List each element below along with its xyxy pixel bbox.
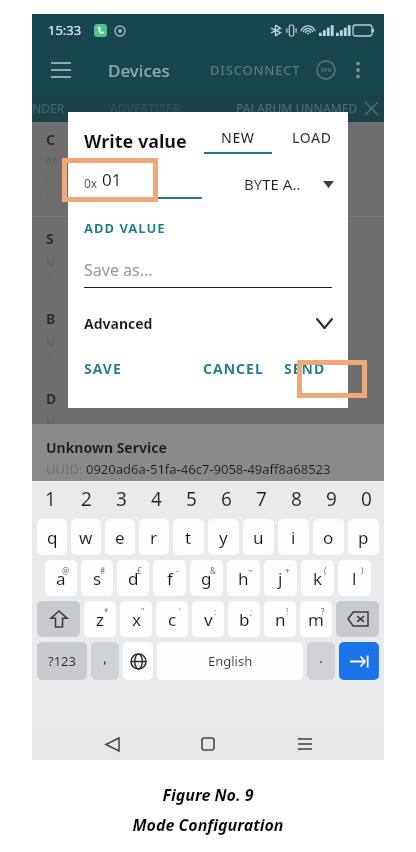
staticText: y xyxy=(219,526,228,549)
button[interactable]: x xyxy=(120,601,152,637)
staticText: ( xyxy=(324,565,327,576)
button[interactable]: 6 xyxy=(209,483,244,515)
staticText: 15:33 xyxy=(48,21,82,39)
staticText: p xyxy=(358,526,369,549)
button[interactable]: g xyxy=(190,560,223,596)
staticText: ' xyxy=(179,606,181,617)
button[interactable]: l xyxy=(338,560,371,596)
button[interactable]: DFU xyxy=(312,56,340,84)
button[interactable]: 0 xyxy=(349,483,384,515)
button[interactable]: NEW xyxy=(196,128,280,154)
button[interactable]: More options xyxy=(344,56,372,84)
staticText: English xyxy=(208,652,253,670)
button[interactable]: k xyxy=(301,560,334,596)
staticText: 0920ad6a-51fa-46c7-9058-49aff8a68523 xyxy=(86,460,331,478)
staticText: i xyxy=(291,526,296,549)
button[interactable]: 8 xyxy=(279,483,314,515)
button[interactable]: b xyxy=(228,601,260,637)
staticText: M xyxy=(46,152,58,170)
button[interactable]: e xyxy=(105,519,135,555)
button[interactable]: h xyxy=(227,560,260,596)
button[interactable]: 4 xyxy=(139,483,174,515)
button[interactable]: z xyxy=(84,601,116,637)
staticText: NEW xyxy=(221,128,255,147)
button[interactable]: Change language xyxy=(123,642,153,680)
button[interactable]: u xyxy=(243,519,274,555)
button[interactable]: Next xyxy=(339,642,379,680)
button[interactable]: i xyxy=(278,519,309,555)
button[interactable]: 1 xyxy=(32,483,68,515)
button[interactable]: d xyxy=(117,560,149,596)
button[interactable]: Shift xyxy=(37,601,80,637)
button[interactable]: o xyxy=(313,519,344,555)
staticText: e xyxy=(115,526,125,549)
staticText: ! xyxy=(286,606,289,617)
button[interactable]: f xyxy=(153,560,186,596)
staticText: h xyxy=(238,567,249,590)
staticText: DISCONNECT xyxy=(210,61,301,79)
staticText: z xyxy=(96,608,104,631)
button[interactable]: Back xyxy=(95,728,129,760)
button[interactable]: 2 xyxy=(68,483,104,515)
staticText: 4 xyxy=(151,486,162,512)
button[interactable]: q xyxy=(37,519,67,555)
button[interactable]: LOAD xyxy=(286,128,338,154)
staticText: C xyxy=(46,130,55,149)
button[interactable]: Backspace xyxy=(336,601,379,637)
button[interactable]: 3 xyxy=(104,483,139,515)
staticText: Devices xyxy=(108,59,170,82)
staticText: q xyxy=(47,526,58,549)
staticText: U xyxy=(46,411,56,424)
button[interactable]: Recents xyxy=(288,728,322,760)
staticText: DFU xyxy=(321,67,332,74)
button[interactable]: 9 xyxy=(314,483,349,515)
button[interactable]: SAVE xyxy=(68,353,132,384)
button[interactable]: Menu xyxy=(46,55,76,85)
staticText: UUID: xyxy=(46,460,86,478)
button[interactable]: ADD VALUE xyxy=(68,215,182,241)
button[interactable]: ?123 xyxy=(37,642,87,680)
button[interactable]: a xyxy=(45,560,77,596)
staticText: LOAD xyxy=(292,128,332,147)
staticText: Write value xyxy=(84,129,187,154)
button[interactable]: CANCEL xyxy=(195,353,272,384)
staticText: ? xyxy=(321,606,325,617)
staticText: 8 xyxy=(291,486,302,512)
staticText: o xyxy=(323,526,334,549)
button[interactable]: , xyxy=(91,642,119,680)
button[interactable]: Advanced xyxy=(68,314,348,333)
staticText: ?123 xyxy=(48,652,76,670)
button[interactable]: r xyxy=(139,519,169,555)
staticText: u xyxy=(253,526,264,549)
staticText: Advanced xyxy=(84,314,153,333)
button[interactable]: 5 xyxy=(174,483,209,515)
button[interactable]: 7 xyxy=(244,483,279,515)
button[interactable]: t xyxy=(173,519,204,555)
button[interactable]: Home xyxy=(191,728,225,760)
button[interactable]: m xyxy=(300,601,332,637)
staticText: : xyxy=(214,606,217,617)
staticText: Mode Configuration xyxy=(132,814,284,836)
button[interactable]: p xyxy=(348,519,379,555)
button[interactable]: v xyxy=(192,601,224,637)
button[interactable]: English xyxy=(157,642,303,680)
button[interactable]: s xyxy=(81,560,113,596)
button[interactable]: DISCONNECT xyxy=(210,61,301,79)
button[interactable]: y xyxy=(208,519,239,555)
button[interactable]: BYTE A.. xyxy=(244,174,348,194)
button[interactable]: n xyxy=(264,601,296,637)
staticText: v xyxy=(204,608,213,631)
staticText: 3 xyxy=(116,486,127,512)
button[interactable]: SEND xyxy=(284,353,348,384)
staticText: d xyxy=(128,567,139,590)
staticText: CANCEL xyxy=(203,359,264,378)
staticText: , xyxy=(103,647,108,667)
button[interactable]: j xyxy=(264,560,297,596)
button[interactable]: w xyxy=(71,519,101,555)
button[interactable]: . xyxy=(307,642,335,680)
button[interactable]: c xyxy=(156,601,188,637)
staticText: 2 xyxy=(81,486,92,512)
staticText: - xyxy=(176,565,179,576)
